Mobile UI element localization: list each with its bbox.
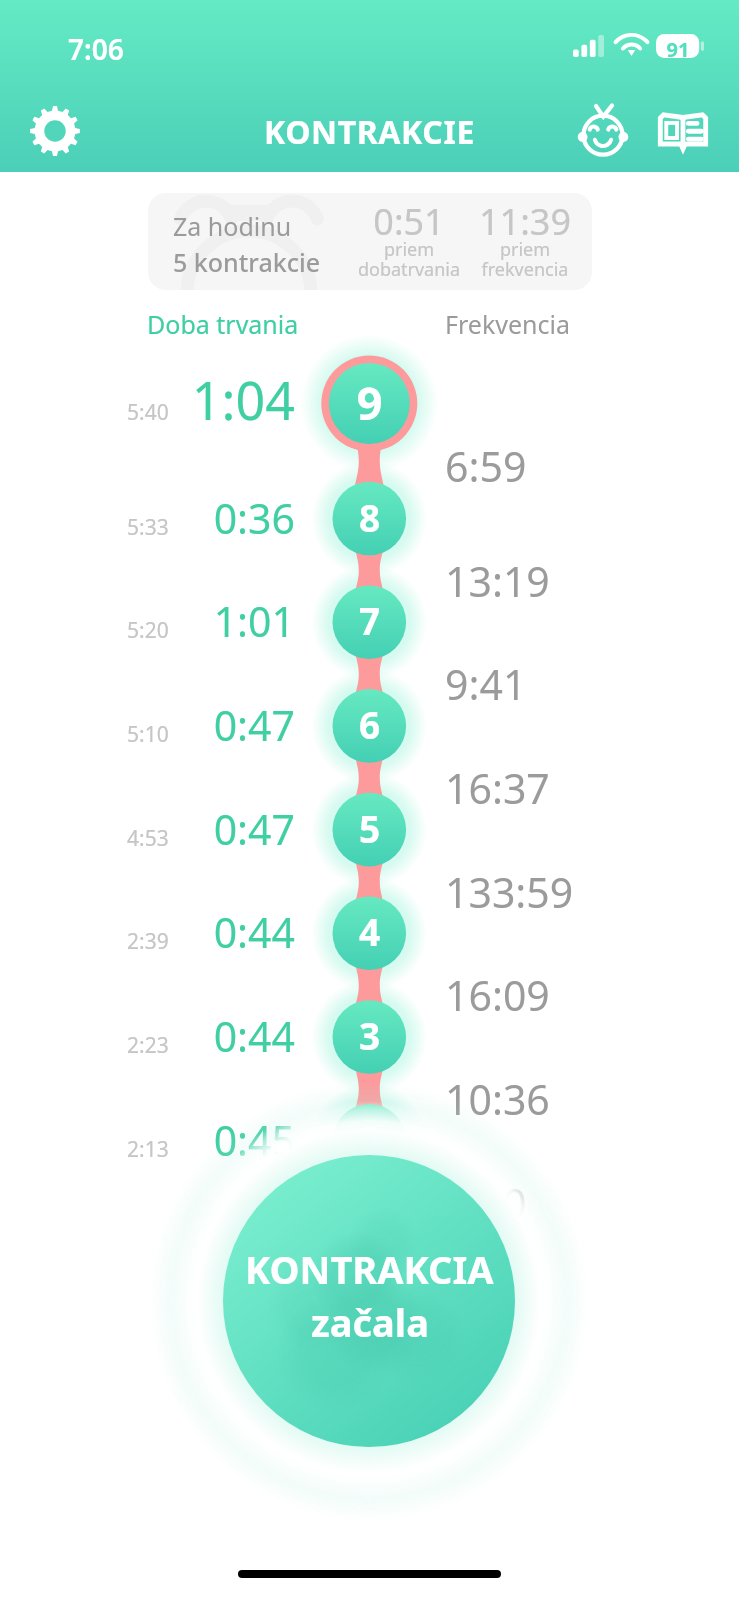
staticText: 16:09 [445,967,739,1023]
staticText: 5 kontrakcie [173,245,321,279]
staticText: priem [445,237,605,262]
button[interactable]: 4:53 [0,760,739,900]
staticText: 3 [0,1010,739,1060]
staticText: 0:47 [120,801,295,857]
staticText: 2:13 [127,1135,739,1164]
staticText: 2:23 [127,1031,739,1060]
button[interactable]: 5:10 [0,656,739,796]
staticText: 1:01 [120,593,295,649]
staticText: 133:59 [445,864,739,920]
button[interactable]: Za hodinu [148,193,592,290]
button[interactable]: 5:40 [0,334,739,474]
staticText: Frekvencia [445,307,570,341]
staticText: Doba trvania [147,307,299,341]
staticText: KONTRAKCIA [245,1243,494,1295]
staticText: 1:04 [120,364,295,435]
staticText: Za hodinu [173,209,292,243]
button[interactable]: Baby profile [568,96,638,166]
button[interactable]: KONTRAKCIA [223,1155,515,1447]
staticText: 13:19 [445,553,739,609]
staticText: začala [311,1296,429,1348]
staticText: 0:44 [120,904,295,960]
staticText: 5 [0,803,739,853]
staticText: 5:40 [127,398,739,427]
staticText: 5:33 [127,513,739,542]
button[interactable]: 2:39 [0,863,739,1003]
button[interactable]: 2:23 [0,967,739,1107]
staticText: 6:00 [445,1175,739,1231]
button[interactable]: 5:33 [0,449,739,589]
button[interactable]: Guide [648,96,718,166]
staticText: 9 [0,372,739,433]
staticText: 7 [0,595,739,645]
staticText: 0:47 [120,697,295,753]
button[interactable]: 5:20 [0,552,739,692]
button[interactable]: 2:13 [0,1071,739,1211]
staticText: 91 [656,36,700,63]
staticText: 9:41 [445,656,739,712]
staticText: 4 [0,906,739,956]
staticText: 2:39 [127,927,739,956]
staticText: 4:53 [127,824,739,853]
staticText: 6:59 [445,438,739,494]
staticText: 6 [0,699,739,749]
staticText: frekvencia [445,257,605,282]
staticText: 10:36 [445,1071,739,1127]
staticText: 0:45 [120,1112,295,1168]
staticText: 8 [0,492,739,542]
staticText: 2 [0,1114,739,1164]
staticText: 11:39 [445,197,605,246]
staticText: 5:10 [127,720,739,749]
staticText: KONTRAKCIE [0,110,739,154]
staticText: 0:44 [120,1008,295,1064]
staticText: 5:20 [127,616,739,645]
staticText: 7:06 [68,30,124,68]
staticText: dobatrvania [329,257,489,282]
staticText: priem [329,237,489,262]
staticText: 0:51 [329,197,489,246]
staticText: 0:36 [120,490,295,546]
button[interactable]: Settings [20,96,90,166]
staticText: 16:37 [445,760,739,816]
